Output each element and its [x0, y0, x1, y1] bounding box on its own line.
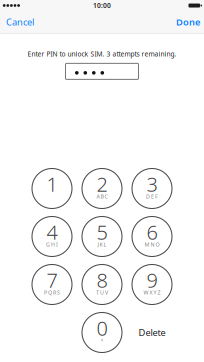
button[interactable]: 5	[82, 216, 122, 256]
staticText: 3	[146, 171, 157, 197]
staticText: 10:00	[93, 1, 111, 10]
button[interactable]: 2	[82, 168, 122, 208]
button[interactable]: 4	[32, 216, 72, 256]
staticText: GHI	[46, 241, 58, 248]
button[interactable]: 0	[82, 312, 122, 352]
staticText: TUV	[96, 289, 108, 296]
staticText: 8	[96, 267, 107, 293]
staticText: 6	[146, 219, 157, 245]
button[interactable]: 7	[32, 264, 72, 304]
staticText: PQRS	[44, 289, 60, 296]
staticText: 1	[46, 171, 57, 197]
staticText: Cancel	[6, 16, 34, 28]
staticText: DEF	[146, 193, 158, 200]
button[interactable]: 1	[32, 168, 72, 208]
button[interactable]: Cancel	[0, 11, 40, 33]
staticText: 4	[46, 219, 57, 245]
staticText: Enter PIN to unlock SIM. 3 attempts rema…	[27, 49, 176, 58]
staticText: 7	[46, 267, 57, 293]
button[interactable]: Done	[170, 11, 204, 33]
staticText: +	[100, 337, 103, 344]
staticText: Delete	[138, 326, 165, 339]
button[interactable]: 3	[132, 168, 172, 208]
button[interactable]: 9	[132, 264, 172, 304]
staticText: WXYZ	[143, 289, 160, 296]
button[interactable]: 6	[132, 216, 172, 256]
button[interactable]: Delete	[132, 312, 172, 352]
staticText: MNO	[144, 241, 159, 248]
button[interactable]: 8	[82, 264, 122, 304]
staticText: ABC	[96, 193, 107, 200]
staticText: JKL	[97, 241, 106, 248]
button[interactable]: PIN	[65, 63, 138, 79]
staticText: Done	[176, 16, 200, 28]
staticText: 9	[146, 267, 157, 293]
staticText: 0	[96, 315, 107, 341]
staticText: 5	[96, 219, 107, 245]
staticText: 2	[96, 171, 107, 197]
